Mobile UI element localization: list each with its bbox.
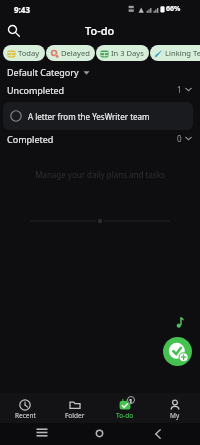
staticText: In 3 Days <box>111 48 144 58</box>
staticText: A letter from the YesWriter team <box>28 111 150 122</box>
staticText: My <box>170 411 180 420</box>
staticText: Delayed <box>61 48 90 58</box>
button[interactable]: Folder <box>50 393 100 423</box>
button[interactable]: Home <box>89 423 110 444</box>
staticText: To-do <box>116 411 134 420</box>
button[interactable]: Completed <box>7 130 192 147</box>
button[interactable]: Back <box>147 423 168 444</box>
staticText: Uncompleted <box>7 84 65 96</box>
staticText: Manage your daily plans and tasks <box>0 169 200 180</box>
button[interactable]: Recent <box>0 393 50 423</box>
button[interactable]: Music <box>174 315 186 329</box>
staticText: Recent <box>15 411 36 420</box>
staticText: Today <box>18 48 40 58</box>
staticText: 1 <box>129 397 133 404</box>
staticText: 9:43 <box>14 4 30 15</box>
button[interactable]: 1 <box>100 393 150 423</box>
staticText: Default Category <box>7 66 79 78</box>
button[interactable]: Default Category <box>6 64 91 80</box>
staticText: To-do <box>85 23 115 38</box>
staticText: Folder <box>65 411 85 420</box>
staticText: 66% <box>166 4 181 14</box>
button[interactable]: Uncompleted <box>7 81 192 98</box>
staticText: Completed <box>7 133 54 145</box>
button[interactable]: In 3 Days <box>96 45 149 61</box>
staticText: 1 <box>177 84 182 95</box>
button[interactable]: My <box>150 393 200 423</box>
button[interactable]: Add task <box>163 337 192 366</box>
button[interactable]: A letter from the YesWriter team <box>3 102 193 130</box>
button[interactable]: Recents <box>31 422 52 443</box>
button[interactable]: Linking Text <box>150 45 200 61</box>
button[interactable]: Delayed <box>46 45 95 61</box>
button[interactable]: Search <box>5 22 22 39</box>
button[interactable]: Today <box>3 45 45 61</box>
staticText: Linking Text <box>165 48 200 58</box>
staticText: 0 <box>177 133 182 144</box>
